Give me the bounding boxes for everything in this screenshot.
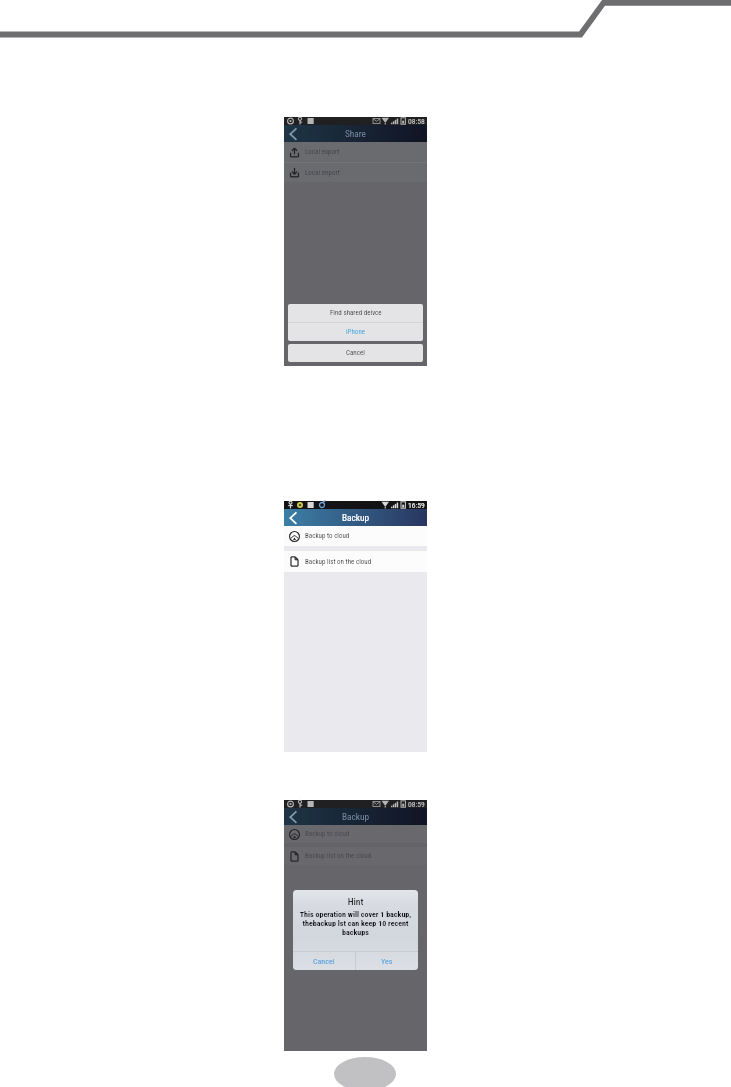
staticText: 08:59 — [408, 800, 425, 808]
button[interactable]: Cancel — [293, 952, 355, 970]
staticText: Cancel — [313, 957, 335, 966]
button[interactable]: Backup to cloud — [284, 526, 427, 546]
staticText: Local import — [305, 169, 340, 177]
staticText: Backup list on the cloud — [305, 558, 372, 566]
button[interactable]: Cancel — [288, 344, 423, 362]
button[interactable]: Backup list on the cloud — [284, 847, 427, 865]
button[interactable]: Local export — [284, 142, 427, 162]
button[interactable]: Backup list on the cloud — [284, 551, 427, 572]
staticText: This operation will cover 1 backup, theb… — [293, 910, 418, 937]
button[interactable]: Back — [284, 509, 301, 526]
staticText: iPhone — [346, 328, 366, 336]
staticText: Backup — [342, 512, 370, 523]
button[interactable]: Back — [284, 808, 301, 825]
staticText: Cancel — [346, 349, 365, 357]
staticText: Backup — [342, 811, 370, 822]
staticText: Backup to cloud — [305, 532, 350, 540]
staticText: Find shared deivce — [330, 309, 382, 317]
staticText: Backup list on the cloud — [305, 852, 372, 860]
button[interactable]: iPhone — [288, 323, 423, 341]
button[interactable]: Backup to cloud — [284, 825, 427, 843]
button[interactable]: Back — [284, 125, 301, 142]
staticText: Share — [345, 128, 366, 139]
button[interactable]: Find shared deivce — [288, 304, 423, 322]
staticText: Hint — [293, 896, 418, 907]
button[interactable]: Yes — [356, 952, 418, 970]
staticText: Yes — [381, 957, 393, 966]
staticText: 16:59 — [408, 501, 425, 509]
button[interactable]: Local import — [284, 163, 427, 182]
staticText: Local export — [305, 148, 340, 156]
staticText: 08:58 — [408, 117, 425, 125]
staticText: Backup to cloud — [305, 830, 350, 838]
